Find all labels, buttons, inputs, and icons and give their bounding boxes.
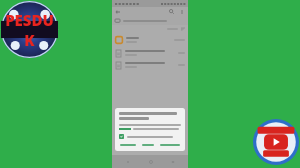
button[interactable]: Home	[144, 155, 157, 168]
button[interactable]	[112, 33, 188, 47]
button[interactable]	[141, 143, 155, 147]
button[interactable]	[119, 134, 181, 139]
staticText: PESDUK	[1, 10, 58, 50]
button[interactable]	[112, 59, 188, 71]
button[interactable]	[112, 16, 188, 25]
button[interactable]: More options	[178, 8, 185, 15]
button[interactable]: Search	[168, 8, 175, 15]
button[interactable]: Menu	[115, 9, 121, 15]
button[interactable]	[159, 143, 181, 147]
button[interactable]	[119, 143, 137, 147]
button[interactable]	[112, 47, 188, 59]
button[interactable]: Subscribe to channel	[253, 119, 299, 165]
